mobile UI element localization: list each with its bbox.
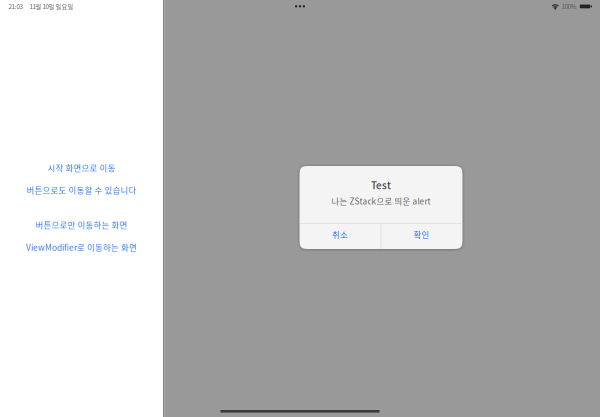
staticText: 시작 화면으로 이동 — [47, 162, 115, 174]
staticText: 21:03 — [8, 2, 22, 11]
staticText: 100% — [562, 2, 577, 11]
staticText: 확인 — [414, 228, 430, 240]
staticText: 버튼으로만 이동하는 화면 — [35, 219, 127, 231]
staticText: Test — [371, 178, 391, 192]
button[interactable]: 시작 화면으로 이동 — [0, 161, 163, 174]
staticText: 11월 10일 일요일 — [29, 2, 73, 11]
button[interactable]: 취소 — [299, 222, 381, 247]
staticText: 버튼으로도 이동할 수 있습니다 — [26, 184, 136, 196]
staticText: 나는 ZStack으로 띄운 alert — [331, 195, 430, 207]
button[interactable]: 확인 — [381, 222, 462, 247]
button[interactable]: 버튼으로만 이동하는 화면 — [0, 218, 163, 231]
staticText: 취소 — [332, 228, 348, 240]
button[interactable]: ViewModifier로 이동하는 화면 — [0, 241, 163, 254]
staticText: ViewModifier로 이동하는 화면 — [26, 241, 137, 253]
button[interactable]: 버튼으로도 이동할 수 있습니다 — [0, 183, 163, 196]
